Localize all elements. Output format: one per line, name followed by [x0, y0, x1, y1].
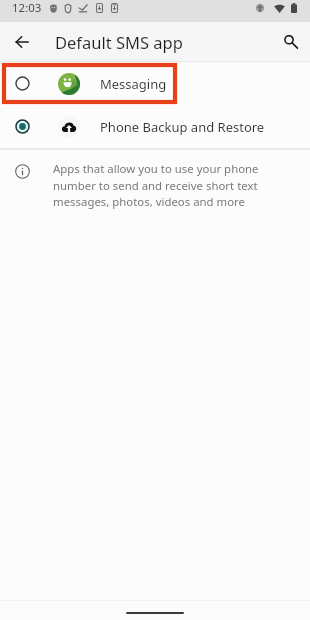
button[interactable]: Phone Backup and Restore [0, 105, 310, 148]
staticText: Messaging [100, 75, 167, 93]
staticText: Apps that allow you to use your phone nu… [53, 161, 265, 209]
staticText: Phone Backup and Restore [100, 118, 265, 136]
staticText: Default SMS app [55, 31, 183, 53]
button[interactable]: Search [271, 22, 309, 61]
button[interactable]: Messaging [0, 62, 310, 105]
button[interactable]: Back [0, 22, 44, 61]
staticText: 12:03 [12, 0, 42, 16]
